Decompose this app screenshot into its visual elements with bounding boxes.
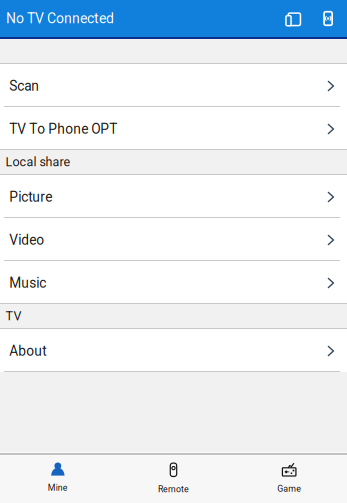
button[interactable]: Screen mirroring [278,0,312,37]
button[interactable]: Music [0,261,347,304]
staticText: Music [9,275,46,291]
staticText: Mine [48,483,68,493]
button[interactable]: Picture [0,175,347,218]
button[interactable]: About [0,329,347,372]
button[interactable]: Scan [0,64,347,107]
staticText: Game [277,484,301,494]
button[interactable]: Connect device [312,0,341,37]
staticText: About [9,343,46,359]
button[interactable]: Game [231,454,347,503]
button[interactable]: Mine [0,454,116,503]
staticText: Scan [9,78,39,94]
staticText: Remote [158,484,189,494]
button[interactable]: Video [0,218,347,261]
staticText: Local share [5,155,70,169]
staticText: No TV Connected [6,10,114,27]
staticText: TV To Phone OPT [9,121,117,137]
staticText: Picture [9,189,52,205]
staticText: TV [5,309,21,323]
staticText: Video [9,232,44,248]
button[interactable]: Remote [116,454,231,503]
button[interactable]: TV To Phone OPT [0,107,347,150]
